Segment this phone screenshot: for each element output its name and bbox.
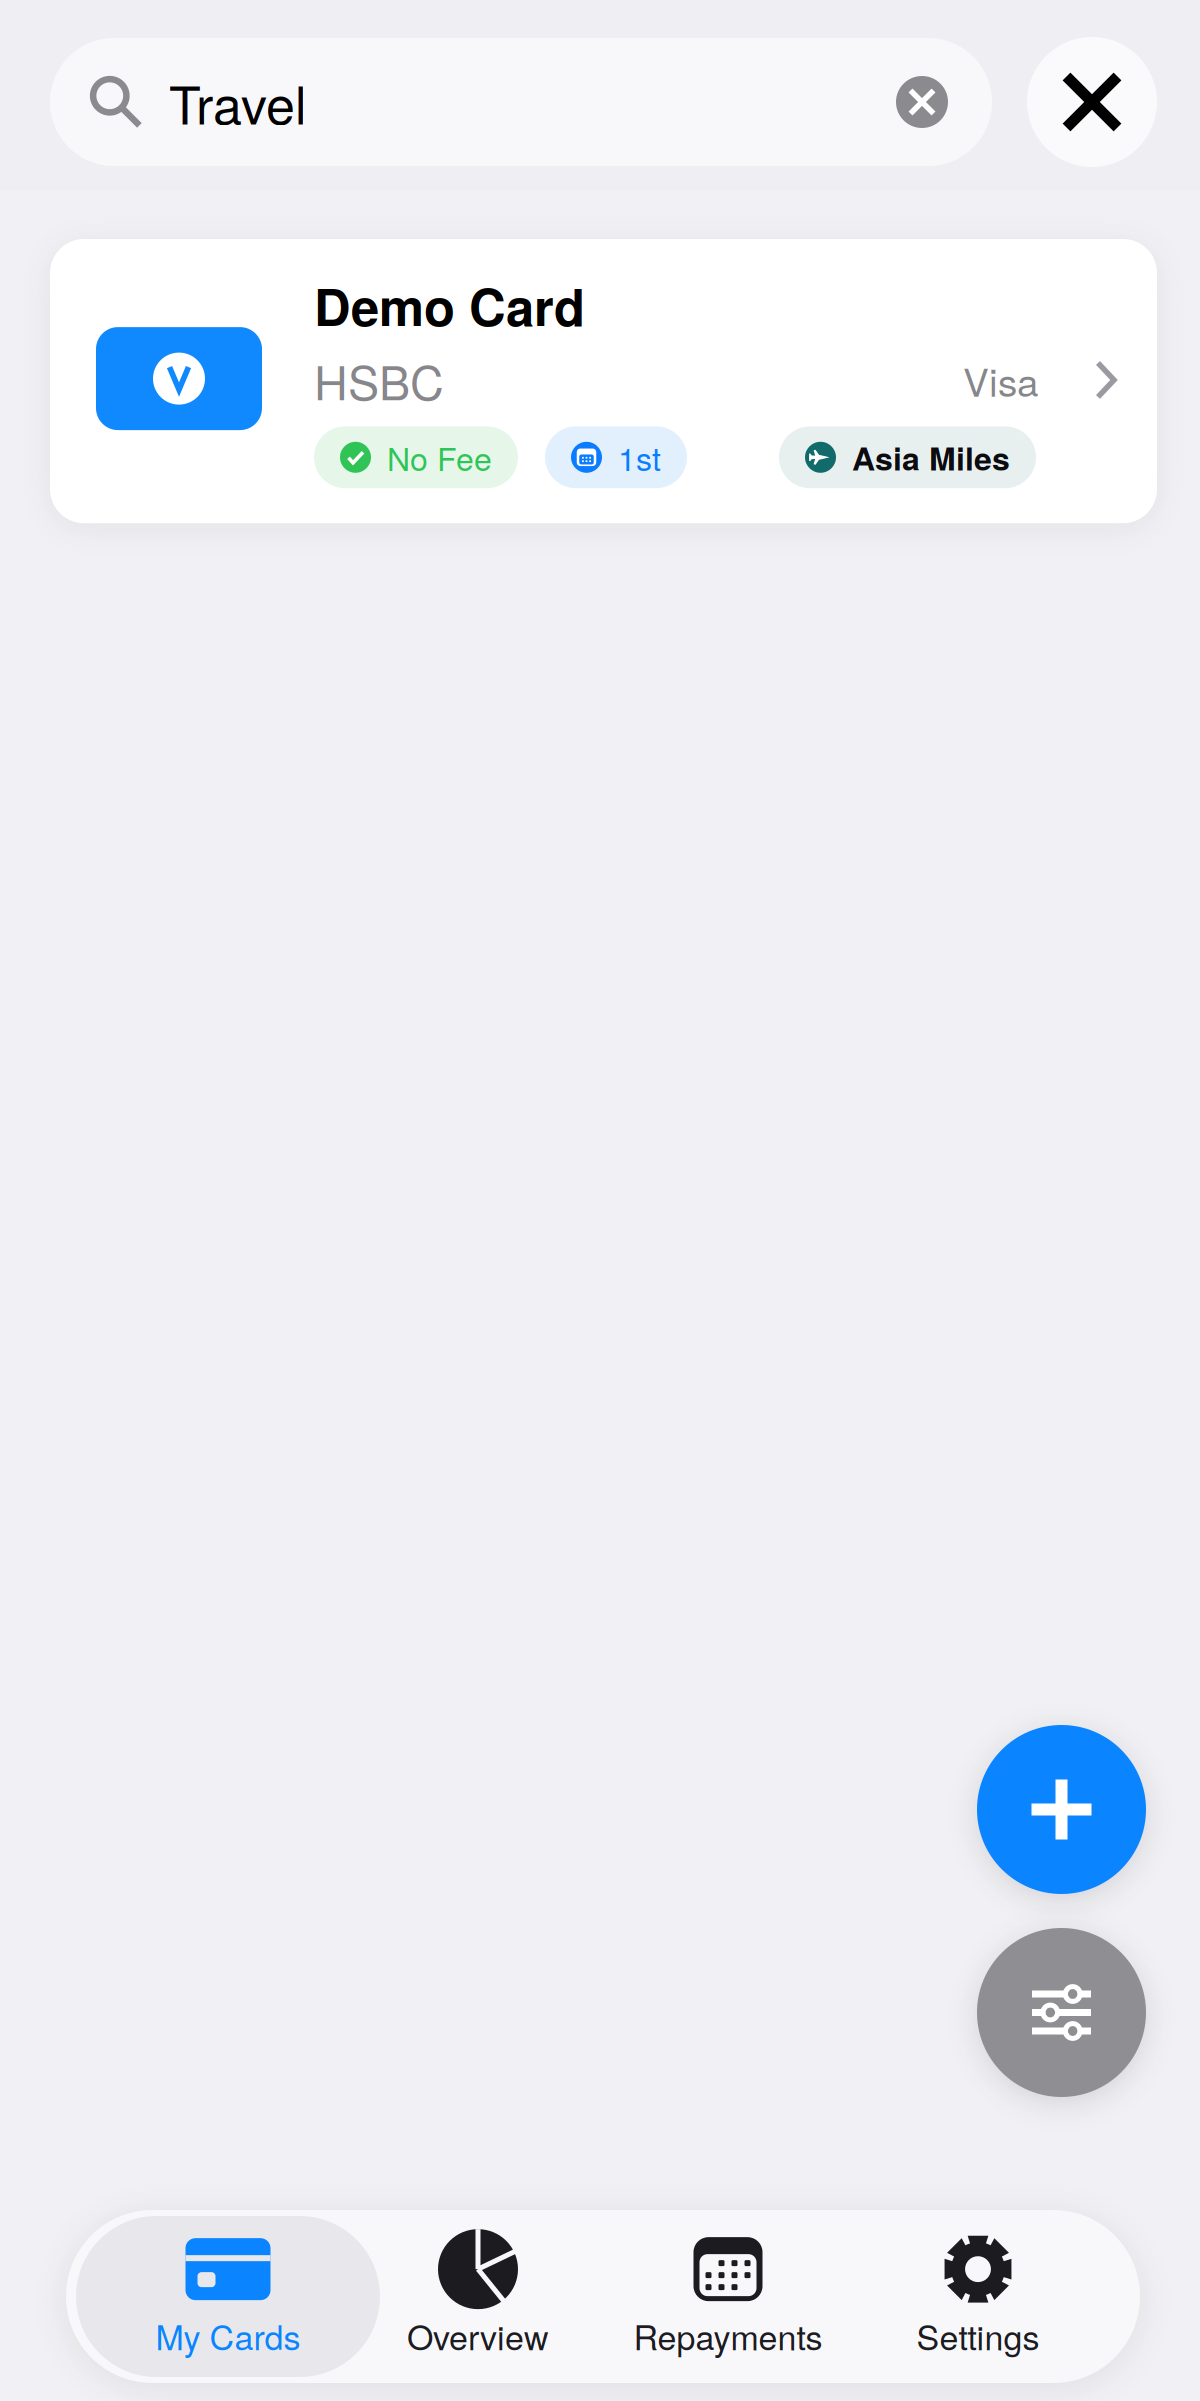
button[interactable]: Add card: [977, 1725, 1146, 1894]
staticText: 1st: [618, 434, 661, 480]
staticText: Travel: [169, 65, 307, 139]
staticText: HSBC: [314, 347, 444, 413]
button[interactable]: Overview: [353, 2216, 603, 2377]
staticText: No Fee: [387, 434, 492, 480]
button[interactable]: Repayments: [603, 2216, 853, 2377]
button[interactable]: Close: [1027, 37, 1157, 167]
button[interactable]: My Cards: [103, 2216, 353, 2377]
button[interactable]: Clear search: [896, 76, 992, 128]
staticText: Demo Card: [314, 269, 585, 342]
staticText: Repayments: [633, 2311, 822, 2360]
staticText: My Cards: [155, 2311, 300, 2360]
staticText: Visa: [963, 352, 1038, 408]
staticText: Asia Miles: [852, 434, 1010, 480]
staticText: Overview: [407, 2311, 549, 2360]
button[interactable]: Settings: [853, 2216, 1103, 2377]
button[interactable]: Filter: [977, 1928, 1146, 2097]
button[interactable]: Demo Card: [50, 239, 1157, 523]
staticText: Settings: [916, 2311, 1039, 2360]
